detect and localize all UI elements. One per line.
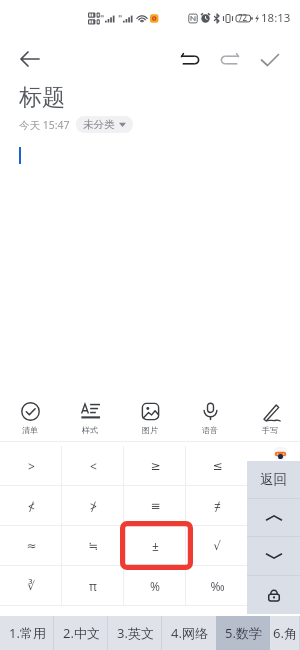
button[interactable]: 3.英文 xyxy=(108,616,162,650)
button[interactable]: 手写 xyxy=(240,395,300,441)
staticText: ≒ xyxy=(88,539,99,553)
staticText: < xyxy=(90,458,97,474)
button[interactable]: ± xyxy=(124,526,186,565)
button[interactable]: ≡ xyxy=(124,486,186,525)
staticText: ≯ xyxy=(90,498,97,514)
staticText: 今天 15:47 xyxy=(19,118,70,132)
staticText: 样式 xyxy=(82,425,98,435)
staticText: ≈ xyxy=(26,539,37,553)
button[interactable]: √ xyxy=(186,526,248,565)
button[interactable]: ∛ xyxy=(0,566,62,605)
staticText: 6.角 xyxy=(273,624,297,642)
button[interactable]: Back xyxy=(12,41,48,77)
button[interactable]: Input method xyxy=(273,446,288,461)
button[interactable]: 6.角 xyxy=(270,616,300,650)
staticText: 清单 xyxy=(22,425,38,435)
staticText: 语音 xyxy=(202,425,218,435)
button[interactable] xyxy=(247,537,300,575)
staticText: π xyxy=(89,578,97,594)
button[interactable]: 清单 xyxy=(0,395,60,441)
button[interactable]: Redo xyxy=(210,43,250,77)
staticText: > xyxy=(28,458,35,474)
button[interactable]: 未分类 xyxy=(76,116,133,133)
staticText: 4.网络 xyxy=(171,624,208,642)
button[interactable] xyxy=(247,576,300,614)
staticText: ≥ xyxy=(150,459,161,473)
staticText: % xyxy=(150,578,160,594)
button[interactable]: π xyxy=(62,566,124,605)
button[interactable]: > xyxy=(0,446,62,485)
staticText: ≤ xyxy=(212,459,223,473)
staticText: 手写 xyxy=(262,425,278,435)
button[interactable]: 返回 xyxy=(247,461,300,498)
staticText: 18:13 xyxy=(261,10,291,26)
staticText: ‰ xyxy=(210,578,225,594)
button[interactable]: Undo xyxy=(170,43,210,77)
button[interactable]: 4.网络 xyxy=(162,616,216,650)
button[interactable]: 2.中文 xyxy=(54,616,108,650)
button[interactable]: < xyxy=(62,446,124,485)
button[interactable]: ≒ xyxy=(62,526,124,565)
staticText: ≡ xyxy=(150,499,161,513)
staticText: 2.中文 xyxy=(63,624,100,642)
button[interactable]: % xyxy=(124,566,186,605)
button[interactable]: ≈ xyxy=(0,526,62,565)
staticText: ≠ xyxy=(214,498,221,514)
button[interactable]: 样式 xyxy=(60,395,120,441)
button[interactable]: ≥ xyxy=(124,446,186,485)
button[interactable]: 图片 xyxy=(120,395,180,441)
staticText: 5.数学 xyxy=(225,624,262,642)
button[interactable]: 5.数学 xyxy=(216,616,270,650)
button[interactable]: 语音 xyxy=(180,395,240,441)
button[interactable] xyxy=(247,499,300,536)
button[interactable]: 1.常用 xyxy=(0,616,54,650)
staticText: 标题 xyxy=(19,83,65,112)
staticText: ∛ xyxy=(27,579,35,593)
staticText: ≮ xyxy=(28,498,35,514)
staticText: 72 xyxy=(238,12,248,23)
button[interactable]: ≮ xyxy=(0,486,62,525)
staticText: 未分类 xyxy=(83,118,115,131)
staticText: 图片 xyxy=(142,425,158,435)
button[interactable]: ≠ xyxy=(186,486,248,525)
button[interactable]: ≯ xyxy=(62,486,124,525)
staticText: √ xyxy=(213,539,221,553)
staticText: 3.英文 xyxy=(117,624,154,642)
button[interactable]: ‰ xyxy=(186,566,248,605)
button[interactable]: ≤ xyxy=(186,446,248,485)
staticText: ± xyxy=(152,538,159,554)
staticText: 1.常用 xyxy=(9,624,46,642)
button[interactable]: Done xyxy=(250,43,290,77)
staticText: 返回 xyxy=(260,471,287,488)
